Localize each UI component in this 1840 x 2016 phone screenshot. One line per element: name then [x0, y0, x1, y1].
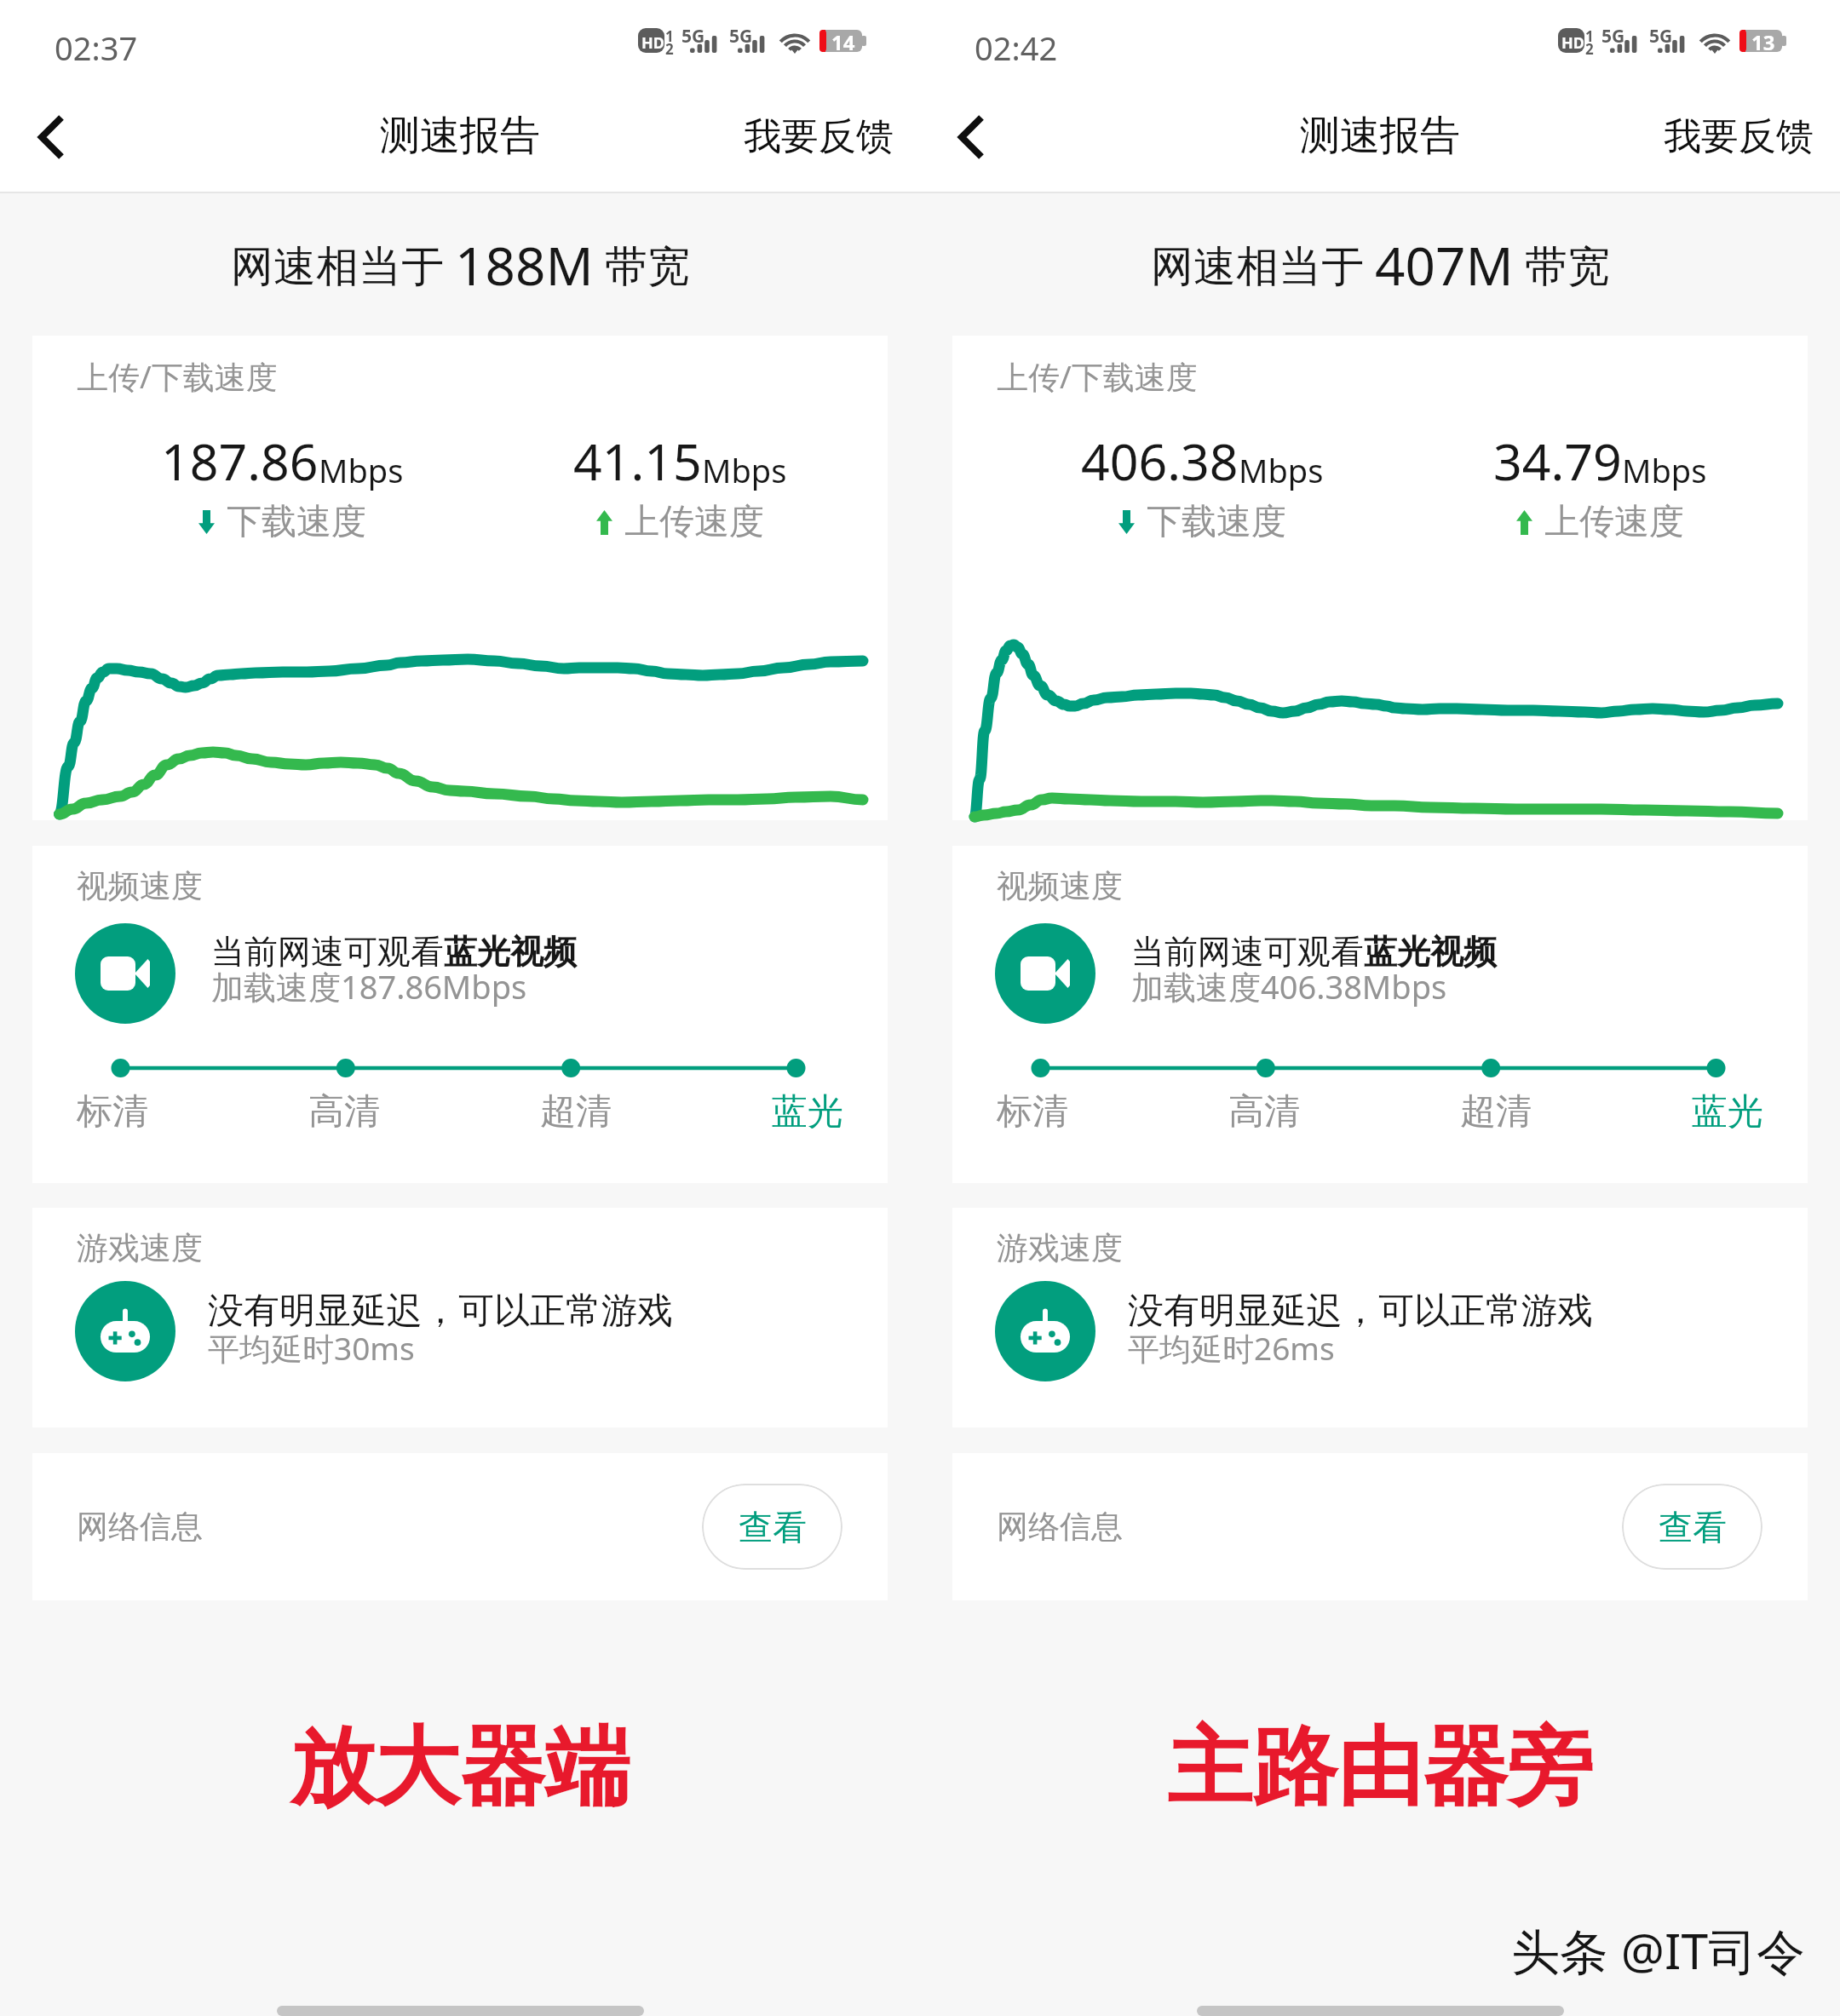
staticText: Mbps — [1239, 448, 1324, 492]
staticText: 放大器端 — [290, 1714, 630, 1822]
staticText: 游戏速度 — [997, 1228, 1123, 1268]
staticText: 上传速度 — [624, 500, 764, 544]
staticText: 14 — [831, 28, 855, 55]
staticText: 02:37 — [55, 26, 138, 70]
button[interactable]: 查看 — [1622, 1484, 1762, 1570]
staticText: 当前网速可观看 — [211, 931, 444, 973]
staticText: 5G — [1601, 24, 1625, 49]
staticText: 没有明显延迟，可以正常游戏 — [208, 1289, 673, 1334]
button[interactable]: 上传/下载速度 — [952, 336, 1808, 820]
staticText: 没有明显延迟，可以正常游戏 — [1128, 1289, 1593, 1334]
staticText: 02:42 — [975, 26, 1058, 70]
staticText: 游戏速度 — [77, 1228, 203, 1268]
staticText: Mbps — [702, 448, 787, 492]
button[interactable]: 视频速度 — [952, 846, 1808, 1183]
staticText: 高清 — [1228, 1089, 1300, 1134]
staticText: 测速报告 — [1300, 111, 1460, 161]
button[interactable]: 视频速度 — [32, 846, 888, 1183]
staticText: 平均延时30ms — [208, 1326, 415, 1370]
staticText: 当前网速可观看 — [1131, 931, 1364, 973]
staticText: 测速报告 — [380, 111, 540, 161]
button[interactable]: 我要反馈 — [744, 113, 894, 160]
staticText: 网络信息 — [997, 1507, 1123, 1547]
staticText: 上传速度 — [1544, 500, 1684, 544]
staticText: 5G — [1649, 24, 1673, 49]
staticText: 5G — [681, 24, 705, 49]
staticText: 主路由器旁 — [1167, 1714, 1593, 1822]
button[interactable]: Back — [9, 94, 94, 181]
staticText: HD — [1561, 32, 1584, 54]
button[interactable]: 游戏速度 — [32, 1208, 888, 1427]
staticText: 带宽 — [594, 236, 690, 294]
staticText: 查看 — [739, 1506, 807, 1548]
staticText: HD — [641, 32, 664, 54]
staticText: 下载速度 — [227, 500, 366, 544]
staticText: 视频速度 — [997, 866, 1123, 906]
staticText: 网络信息 — [77, 1507, 203, 1547]
staticText: Mbps — [319, 448, 404, 492]
staticText: 蓝光视频 — [444, 931, 577, 973]
staticText: 188M — [455, 229, 594, 301]
staticText: 网速相当于 — [231, 236, 455, 294]
staticText: 查看 — [1659, 1506, 1727, 1548]
staticText: 41.15 — [573, 427, 702, 495]
staticText: 高清 — [308, 1089, 380, 1134]
staticText: 超清 — [540, 1089, 612, 1134]
staticText: 407M — [1375, 229, 1514, 301]
staticText: 13 — [1751, 28, 1775, 55]
staticText: 加载速度406.38Mbps — [1131, 964, 1447, 1008]
staticText: 标清 — [997, 1089, 1068, 1134]
staticText: 蓝光 — [1692, 1089, 1763, 1134]
staticText: 网速相当于 — [1151, 236, 1375, 294]
button[interactable]: 网络信息 — [952, 1453, 1808, 1600]
staticText: 上传/下载速度 — [77, 354, 278, 398]
staticText: 下载速度 — [1147, 500, 1286, 544]
staticText: 视频速度 — [77, 866, 203, 906]
staticText: 蓝光视频 — [1364, 931, 1497, 973]
button[interactable]: 上传/下载速度 — [32, 336, 888, 820]
staticText: 406.38 — [1081, 427, 1239, 495]
staticText: 34.79 — [1493, 427, 1622, 495]
staticText: Mbps — [1622, 448, 1707, 492]
staticText: 5G — [729, 24, 753, 49]
staticText: 加载速度187.86Mbps — [211, 964, 527, 1008]
staticText: 上传/下载速度 — [997, 354, 1198, 398]
staticText: 2 — [665, 39, 674, 59]
staticText: 蓝光 — [772, 1089, 843, 1134]
staticText: 1 — [1585, 26, 1594, 46]
staticText: 超清 — [1460, 1089, 1532, 1134]
button[interactable]: 游戏速度 — [952, 1208, 1808, 1427]
staticText: 187.86 — [161, 427, 319, 495]
button[interactable]: 我要反馈 — [1664, 113, 1814, 160]
staticText: 1 — [665, 26, 674, 46]
staticText: 我要反馈 — [1664, 113, 1814, 160]
staticText: 2 — [1585, 39, 1594, 59]
button[interactable]: 网络信息 — [32, 1453, 888, 1600]
button[interactable]: Back — [929, 94, 1014, 181]
staticText: 头条 @IT司令 — [1511, 1917, 1806, 1984]
button[interactable]: 查看 — [702, 1484, 842, 1570]
staticText: 标清 — [77, 1089, 148, 1134]
staticText: 带宽 — [1514, 236, 1610, 294]
staticText: 我要反馈 — [744, 113, 894, 160]
staticText: 平均延时26ms — [1128, 1326, 1335, 1370]
